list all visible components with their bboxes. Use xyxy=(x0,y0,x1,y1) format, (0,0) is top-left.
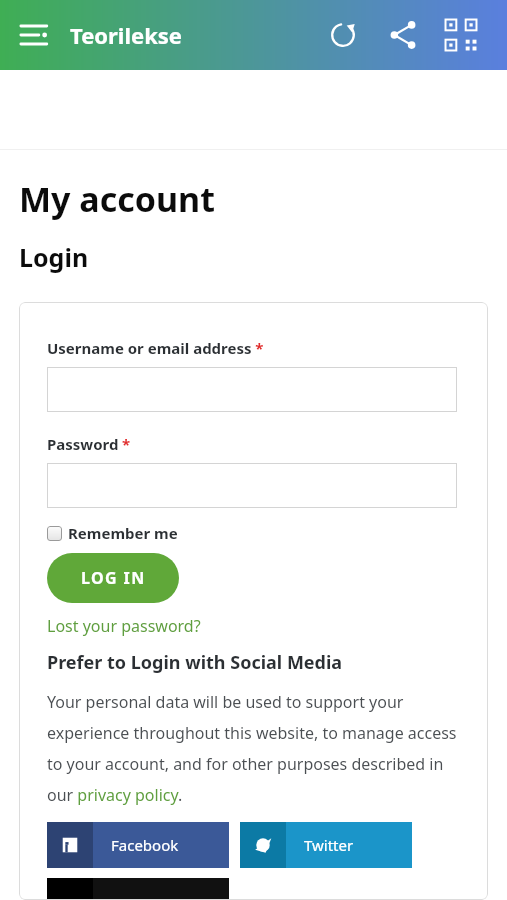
button[interactable]: Open navigation menu xyxy=(18,17,54,53)
button[interactable]: Remember me xyxy=(47,521,178,545)
staticText: Twitter xyxy=(304,835,354,855)
staticText: Password * xyxy=(47,434,131,454)
staticText: Remember me xyxy=(68,523,178,543)
staticText: My account xyxy=(19,176,215,222)
button[interactable] xyxy=(47,367,457,412)
button[interactable] xyxy=(47,463,457,508)
button[interactable]: Share xyxy=(385,17,421,53)
staticText: Username or email address * xyxy=(47,338,264,358)
button[interactable]: Sign in with another provider xyxy=(47,878,229,900)
button[interactable]: LOG IN xyxy=(47,553,179,603)
staticText: LOG IN xyxy=(81,567,146,589)
button[interactable]: Twitter xyxy=(240,822,412,868)
staticText: Your personal data will be used to suppo… xyxy=(47,691,457,806)
button[interactable]: Refresh xyxy=(325,17,361,53)
button[interactable]: Scan QR code xyxy=(443,17,479,53)
button[interactable]: Facebook xyxy=(47,822,229,868)
button[interactable]: Lost your password? xyxy=(47,615,201,637)
staticText: Login xyxy=(19,240,89,274)
staticText: Prefer to Login with Social Media xyxy=(47,650,343,675)
staticText: Teorilekse xyxy=(70,20,182,50)
staticText: Facebook xyxy=(111,835,179,855)
